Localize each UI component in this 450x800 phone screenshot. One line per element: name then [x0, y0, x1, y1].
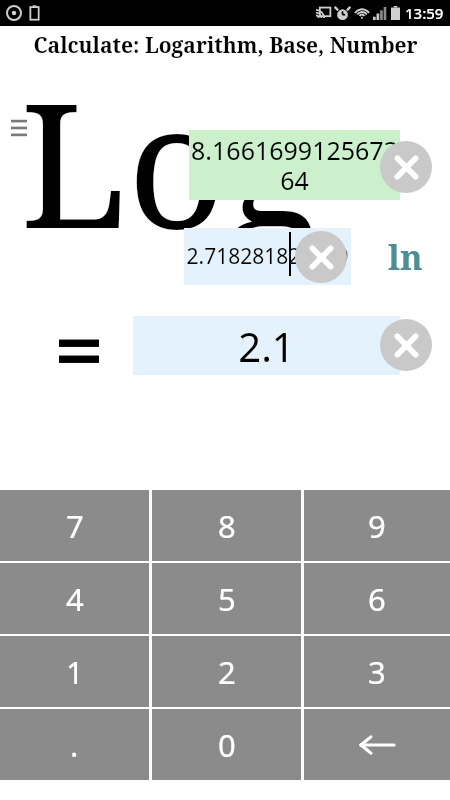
button[interactable]: 2	[152, 636, 301, 707]
button[interactable]: Backspace	[304, 709, 450, 780]
staticText: 1	[66, 651, 84, 693]
button[interactable]: Menu	[4, 110, 34, 146]
staticText: 8	[218, 505, 236, 547]
button[interactable]: 5	[152, 563, 301, 634]
button[interactable]: Clear result	[380, 319, 432, 371]
staticText: 6	[368, 578, 386, 620]
button[interactable]: Clear base	[380, 141, 432, 193]
staticText: ln	[388, 234, 423, 280]
staticText: 4	[66, 578, 84, 620]
button[interactable]: 8	[152, 490, 301, 561]
staticText: 9	[368, 505, 386, 547]
button[interactable]: 1	[0, 636, 149, 707]
button[interactable]: .	[0, 709, 149, 780]
button[interactable]: 2.718281828459	[184, 228, 351, 285]
staticText: .	[70, 724, 79, 766]
button[interactable]: 9	[304, 490, 450, 561]
button[interactable]: 7	[0, 490, 149, 561]
staticText: Calculate: Logarithm, Base, Number	[33, 31, 418, 60]
button[interactable]: 2.1	[133, 316, 400, 375]
staticText: 3	[368, 651, 386, 693]
button[interactable]: 8.166169912567364	[189, 130, 400, 200]
staticText: 7	[66, 505, 84, 547]
staticText: 8.166169912567364	[189, 133, 400, 198]
button[interactable]: 3	[304, 636, 450, 707]
staticText: 2.1	[133, 319, 400, 373]
staticText: 13:59	[405, 3, 444, 23]
button[interactable]: 4	[0, 563, 149, 634]
button[interactable]: ln	[376, 234, 434, 280]
button[interactable]: 6	[304, 563, 450, 634]
button[interactable]: Clear number	[295, 231, 347, 283]
staticText: 2.718281828459	[184, 242, 351, 271]
button[interactable]: 0	[152, 709, 301, 780]
staticText: Log	[20, 44, 319, 278]
staticText: 5	[218, 578, 236, 620]
staticText: 0	[218, 724, 236, 766]
staticText: 2	[218, 651, 236, 693]
